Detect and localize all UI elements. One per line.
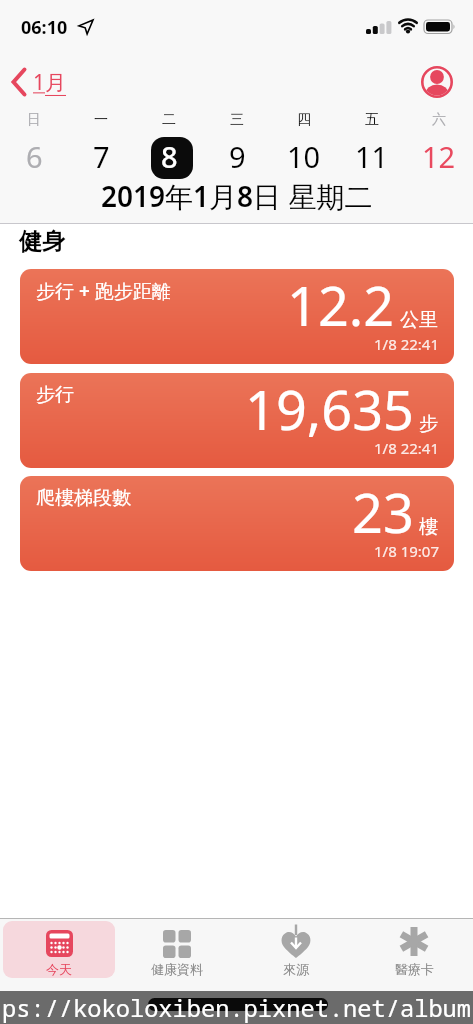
button[interactable]	[12, 62, 102, 102]
staticText: 23	[352, 476, 414, 549]
staticText: 健康資料	[151, 961, 203, 977]
staticText: 6	[26, 137, 43, 176]
button[interactable]	[3, 921, 115, 978]
staticText: 健身	[19, 227, 65, 256]
button[interactable]	[355, 918, 473, 991]
staticText: 10	[287, 137, 321, 176]
button[interactable]	[421, 66, 453, 98]
staticText: 醫療卡	[395, 961, 434, 977]
staticText: 1/8 22:41	[374, 438, 439, 458]
staticText: 步行	[36, 383, 74, 407]
button[interactable]	[237, 918, 355, 991]
button[interactable]: 步行 + 跑步距離	[20, 269, 454, 364]
staticText: 12.2	[287, 269, 395, 342]
staticText: 樓	[419, 515, 438, 539]
staticText: 公里	[400, 308, 438, 332]
staticText: 三	[230, 111, 244, 129]
button[interactable]	[118, 918, 236, 991]
staticText: 12	[422, 137, 456, 176]
button[interactable]: 爬樓梯段數	[20, 476, 454, 571]
staticText: 1/8 19:07	[374, 541, 439, 561]
staticText: 19,635	[245, 373, 414, 446]
staticText: 9	[229, 137, 246, 176]
staticText: ps://kokoloxiben.pixnet.net/album	[2, 992, 472, 1024]
staticText: 今天	[46, 961, 72, 977]
staticText: 11	[355, 137, 389, 176]
staticText: 步	[419, 412, 438, 436]
button[interactable]: 步行	[20, 373, 454, 468]
staticText: 2019年1月8日 星期二	[101, 177, 373, 215]
staticText: 五	[365, 111, 379, 129]
staticText: 06:10	[21, 15, 68, 40]
staticText: 7	[93, 137, 110, 176]
staticText: 二	[162, 111, 176, 129]
staticText: 步行 + 跑步距離	[36, 278, 171, 304]
staticText: 日	[27, 111, 41, 129]
staticText: 爬樓梯段數	[36, 486, 131, 510]
staticText: 來源	[283, 961, 309, 977]
staticText: 1/8 22:41	[374, 334, 439, 354]
staticText: 四	[297, 111, 311, 129]
staticText: 8	[161, 137, 178, 176]
staticText: 六	[432, 111, 446, 129]
staticText: 一	[94, 111, 108, 129]
staticText: 1月	[33, 68, 67, 97]
